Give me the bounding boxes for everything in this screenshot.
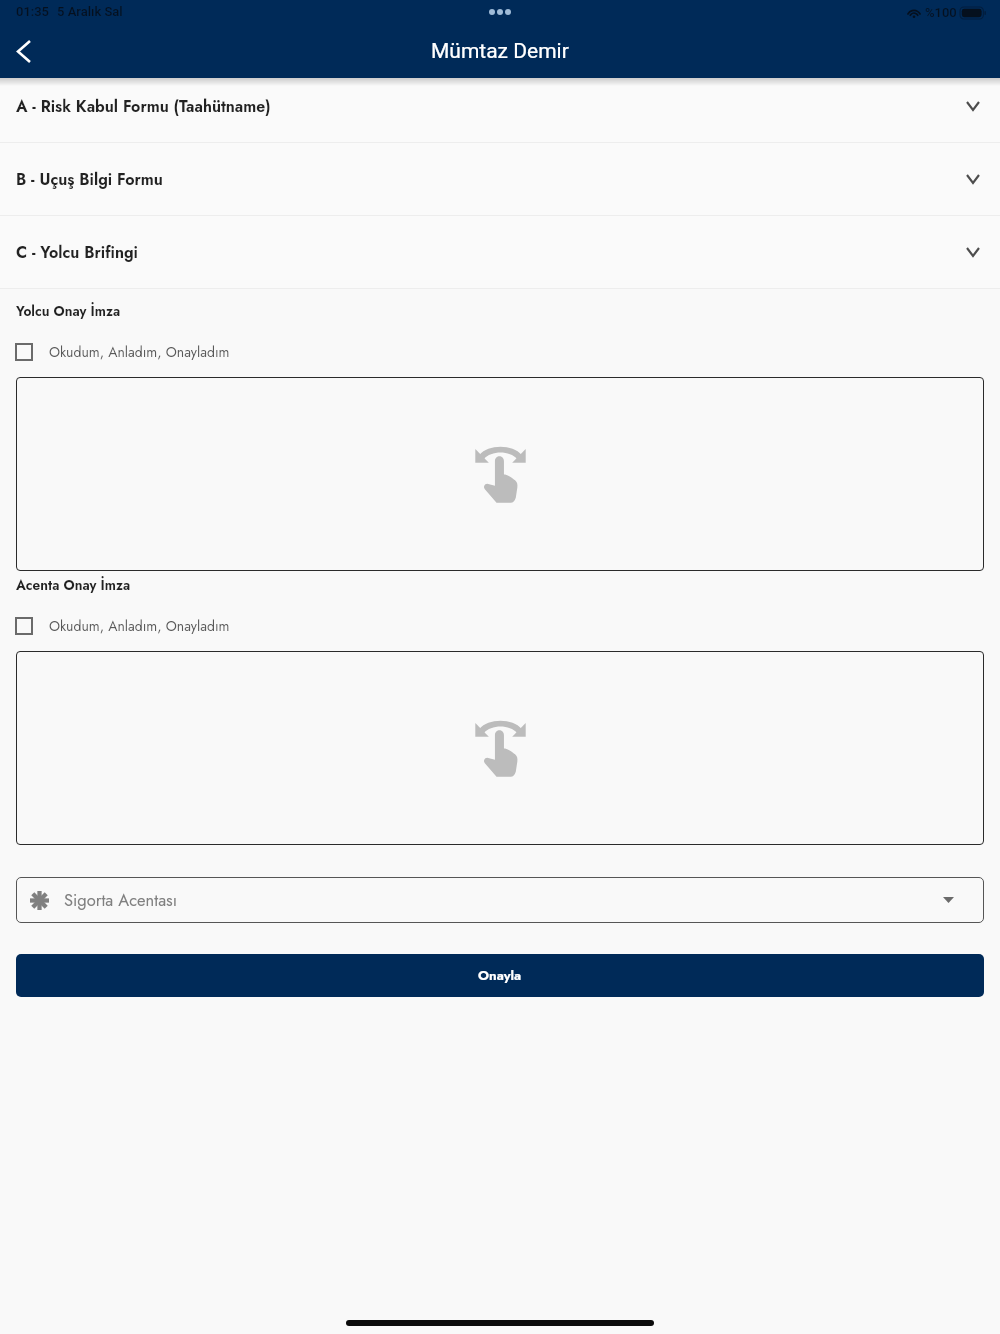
button[interactable]: Geri xyxy=(2,31,46,71)
staticText: Onayla xyxy=(478,966,522,986)
button[interactable] xyxy=(16,651,984,845)
staticText: Mümtaz Demir xyxy=(431,39,569,64)
button[interactable]: Okudum, Anladım, Onayladım xyxy=(15,616,1000,636)
staticText: Okudum, Anladım, Onayladım xyxy=(49,342,230,362)
button[interactable]: B - Uçuş Bilgi Formu xyxy=(0,143,1000,216)
staticText: Acenta Onay İmza xyxy=(16,575,131,595)
button[interactable]: Sigorta Acentası xyxy=(16,877,984,923)
staticText: B - Uçuş Bilgi Formu xyxy=(16,168,163,191)
button[interactable]: A - Risk Kabul Formu (Taahütname) xyxy=(0,70,1000,143)
button[interactable]: Okudum, Anladım, Onayladım xyxy=(15,342,1000,362)
staticText: %100 xyxy=(925,5,957,20)
button[interactable] xyxy=(16,377,984,571)
staticText: 5 Aralık Sal xyxy=(57,4,123,19)
staticText: Okudum, Anladım, Onayladım xyxy=(49,616,230,636)
staticText: Yolcu Onay İmza xyxy=(16,301,121,321)
button[interactable]: Onayla xyxy=(16,954,984,997)
button[interactable]: C - Yolcu Brifingi xyxy=(0,216,1000,289)
staticText: 01:35 xyxy=(16,4,50,19)
staticText: A - Risk Kabul Formu (Taahütname) xyxy=(16,95,271,118)
staticText: C - Yolcu Brifingi xyxy=(16,241,138,264)
staticText: Sigorta Acentası xyxy=(64,888,178,912)
